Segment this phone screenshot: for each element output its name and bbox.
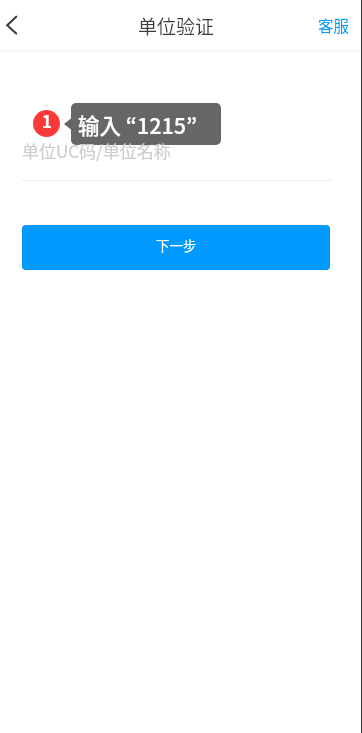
staticText: 下一步 (156, 235, 197, 255)
button[interactable]: Back (0, 0, 44, 51)
staticText: 1 (42, 110, 52, 133)
button[interactable]: 客服 (302, 0, 362, 51)
staticText: 客服 (318, 14, 350, 36)
staticText: 输入 “1215” (78, 109, 198, 140)
staticText: 单位验证 (138, 12, 215, 40)
staticText: 单位UC码/单位名称 (22, 138, 171, 163)
button[interactable]: 下一步 (22, 225, 330, 270)
